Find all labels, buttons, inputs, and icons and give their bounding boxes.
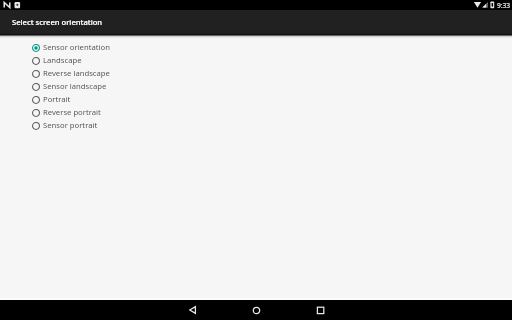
button[interactable]: Home <box>224 300 288 320</box>
button[interactable]: Reverse landscape <box>32 67 172 80</box>
staticText: Reverse landscape <box>43 68 110 78</box>
staticText: Sensor portrait <box>43 120 98 130</box>
button[interactable]: Landscape <box>32 54 172 67</box>
button[interactable]: Sensor landscape <box>32 80 172 93</box>
staticText: Portrait <box>43 94 71 104</box>
staticText: Select screen orientation <box>12 17 103 27</box>
button[interactable]: Sensor portrait <box>32 119 172 132</box>
button[interactable]: Recents <box>288 300 352 320</box>
button[interactable]: Back <box>160 300 224 320</box>
staticText: Sensor landscape <box>43 81 107 91</box>
button[interactable]: Sensor orientation <box>32 41 172 54</box>
staticText: 9:33 <box>497 1 511 10</box>
staticText: Landscape <box>43 55 82 65</box>
button[interactable]: Portrait <box>32 93 172 106</box>
button[interactable]: Reverse portrait <box>32 106 172 119</box>
staticText: Reverse portrait <box>43 107 101 117</box>
staticText: Sensor orientation <box>43 42 110 52</box>
